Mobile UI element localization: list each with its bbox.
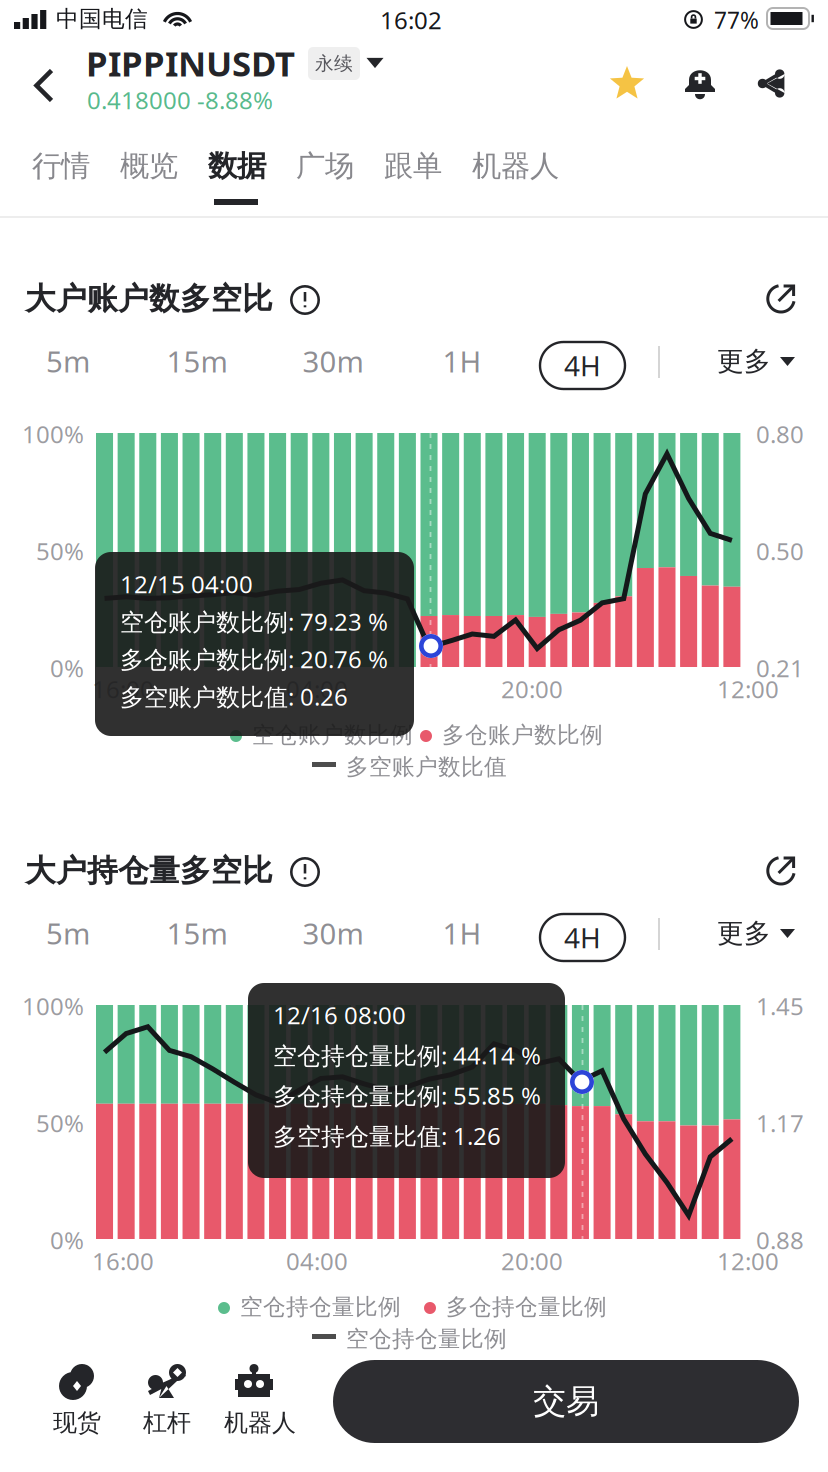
staticText: 4H	[564, 347, 601, 384]
staticText: 4H	[564, 919, 601, 956]
button[interactable]: 30m	[278, 902, 388, 964]
button[interactable]: 4H	[540, 914, 625, 961]
button[interactable]: 数据	[194, 128, 278, 208]
staticText: 15m	[166, 913, 227, 952]
staticText: 机器人	[472, 148, 559, 184]
staticText: 20:00	[501, 673, 563, 705]
staticText: 现货	[53, 1408, 101, 1437]
button[interactable]: 1H	[407, 330, 517, 392]
staticText: 多仓账户数比例	[442, 721, 603, 749]
staticText: 50%	[36, 535, 84, 567]
staticText: 空仓持仓量比例	[240, 1293, 401, 1321]
staticText: 大户持仓量多空比	[25, 852, 273, 890]
button[interactable]: 现货	[52, 1364, 102, 1436]
button[interactable]: 跟单	[370, 128, 454, 208]
button[interactable]: 30m	[278, 330, 388, 392]
staticText: 跟单	[384, 148, 442, 184]
staticText: 0%	[50, 652, 84, 684]
staticText: 100%	[22, 990, 84, 1022]
button[interactable]: Back	[0, 46, 86, 128]
staticText: 1.17	[756, 1107, 804, 1139]
staticText: 数据	[208, 148, 266, 184]
staticText: 机器人	[224, 1408, 296, 1437]
staticText: 1.45	[756, 990, 804, 1022]
staticText: 空仓持仓量比例	[346, 1325, 507, 1353]
button[interactable]: 15m	[142, 902, 252, 964]
button[interactable]: Open full chart	[766, 282, 798, 314]
staticText: 30m	[302, 341, 363, 380]
staticText: 多仓持仓量比例: 55.85 %	[273, 1079, 541, 1111]
staticText: 77%	[714, 5, 759, 35]
button[interactable]: 交易	[333, 1360, 799, 1443]
button[interactable]: 15m	[142, 330, 252, 392]
button[interactable]: 更多	[705, 330, 805, 392]
staticText: 16:00	[92, 673, 154, 705]
staticText: 20:00	[501, 1245, 563, 1277]
staticText: 0.50	[756, 535, 804, 567]
staticText: 多空账户数比值	[346, 753, 507, 781]
staticText: 15m	[166, 341, 227, 380]
button[interactable]: 杠杆	[142, 1364, 192, 1436]
staticText: 0.80	[756, 418, 804, 450]
button[interactable]: 概览	[106, 128, 190, 208]
button[interactable]: Favourite	[608, 66, 646, 104]
button[interactable]: Open full chart	[766, 854, 798, 886]
staticText: 多空持仓量比值: 1.26	[273, 1120, 501, 1152]
button[interactable]: 4H	[540, 342, 625, 389]
staticText: 04:00	[286, 1245, 348, 1277]
staticText: 12:00	[717, 673, 779, 705]
staticText: 交易	[533, 1381, 599, 1422]
staticText: 多空账户数比值: 0.26	[120, 680, 348, 712]
staticText: 永续	[315, 52, 353, 75]
staticText: 1H	[442, 341, 481, 380]
staticText: 0%	[50, 1224, 84, 1256]
staticText: 空仓账户数比例: 79.23 %	[120, 605, 388, 637]
staticText: 中国电信	[56, 5, 148, 33]
button[interactable]: 更多	[705, 902, 805, 964]
button[interactable]: 机器人	[458, 128, 570, 208]
staticText: 空仓账户数比例	[252, 721, 413, 749]
staticText: 0.418000 -8.88%	[87, 84, 273, 116]
button[interactable]: 1H	[407, 902, 517, 964]
button[interactable]: 机器人	[231, 1364, 289, 1436]
staticText: 12/15 04:00	[120, 568, 253, 600]
button[interactable]: 5m	[13, 330, 123, 392]
button[interactable]: Price alert	[683, 65, 717, 101]
button[interactable]: 5m	[13, 902, 123, 964]
button[interactable]: Share	[754, 67, 788, 101]
staticText: 16:02	[380, 4, 442, 36]
button[interactable]: Switch contract	[359, 51, 391, 75]
staticText: 多仓账户数比例: 20.76 %	[120, 643, 388, 675]
staticText: 0.21	[756, 652, 804, 684]
staticText: 50%	[36, 1107, 84, 1139]
staticText: 空仓持仓量比例: 44.14 %	[273, 1039, 541, 1071]
staticText: 5m	[46, 913, 90, 952]
staticText: 广场	[296, 148, 354, 184]
staticText: 概览	[120, 148, 178, 184]
staticText: 5m	[46, 341, 90, 380]
button[interactable]: 广场	[282, 128, 366, 208]
staticText: 04:00	[286, 673, 348, 705]
staticText: 更多	[717, 345, 771, 378]
staticText: 12:00	[717, 1245, 779, 1277]
staticText: 杠杆	[143, 1408, 191, 1437]
staticText: 12/16 08:00	[273, 999, 406, 1031]
staticText: 16:00	[92, 1245, 154, 1277]
staticText: 多仓持仓量比例	[446, 1293, 607, 1321]
staticText: 更多	[717, 917, 771, 950]
staticText: 100%	[22, 418, 84, 450]
staticText: 30m	[302, 913, 363, 952]
button[interactable]: 行情	[18, 128, 102, 208]
staticText: 行情	[32, 148, 90, 184]
staticText: PIPPINUSDT	[86, 40, 295, 86]
staticText: 大户账户数多空比	[25, 280, 273, 318]
staticText: 1H	[442, 913, 481, 952]
staticText: 0.88	[756, 1224, 804, 1256]
